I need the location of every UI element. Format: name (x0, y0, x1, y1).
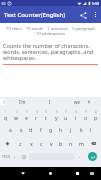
button[interactable]: Switch keyboard (85, 167, 99, 180)
staticText: p (94, 114, 98, 121)
staticText: 5 (45, 110, 47, 114)
button[interactable]: 0 (91, 109, 101, 122)
staticText: 9 (85, 110, 87, 114)
staticText: s (20, 126, 23, 133)
staticText: 5:50 (92, 1, 100, 6)
button[interactable]: Backspace (86, 137, 101, 150)
staticText: 4 (36, 110, 38, 114)
staticText: I (49, 99, 51, 105)
staticText: u (64, 114, 68, 121)
button[interactable]: More options (90, 9, 101, 20)
button[interactable]: 3 (21, 109, 31, 122)
staticText: h (59, 126, 63, 133)
button[interactable]: 8 (71, 109, 81, 122)
button[interactable]: 7 (61, 109, 71, 122)
staticText: ?123 (2, 154, 10, 159)
staticText: i (75, 114, 77, 121)
staticText: f (40, 126, 42, 133)
button[interactable]: s (16, 123, 26, 136)
staticText: b (59, 140, 63, 147)
button[interactable]: . (75, 150, 84, 163)
staticText: I'm (19, 99, 26, 105)
button[interactable]: k (76, 123, 86, 136)
button[interactable]: 2 (11, 109, 21, 122)
button[interactable]: Emoji (19, 150, 28, 163)
button[interactable]: ?123 (0, 150, 11, 163)
staticText: 70 chars 10 words 1 sentence 1 paragraph… (3, 26, 98, 36)
button[interactable]: j (66, 123, 76, 136)
staticText: j (70, 126, 72, 133)
staticText: r (35, 114, 38, 121)
staticText: q (4, 114, 8, 121)
button[interactable]: g (46, 123, 56, 136)
button[interactable]: 6 (51, 109, 61, 122)
button[interactable]: a (5, 123, 16, 136)
button[interactable]: f (36, 123, 46, 136)
button[interactable]: b (56, 137, 66, 150)
button[interactable]: , (11, 150, 19, 163)
staticText: c (40, 140, 43, 147)
staticText: we (74, 99, 80, 105)
button[interactable]: v (46, 137, 56, 150)
staticText: l (90, 126, 92, 133)
staticText: m (79, 140, 84, 147)
staticText: g (49, 126, 53, 133)
staticText: o (84, 114, 88, 121)
staticText: 8 (75, 110, 77, 114)
button[interactable]: Home (43, 167, 57, 180)
button[interactable]: 4 (31, 109, 41, 122)
staticText: Text Counter(English) (4, 11, 76, 19)
staticText: a (9, 126, 12, 133)
button[interactable]: l (86, 123, 96, 136)
button[interactable]: Enter (84, 150, 101, 163)
staticText: Counts the number of characters, words, … (3, 42, 98, 61)
staticText: n (69, 140, 73, 147)
button[interactable]: m (76, 137, 86, 150)
staticText: z (19, 140, 22, 147)
button[interactable]: h (56, 123, 66, 136)
staticText: . (79, 153, 81, 160)
staticText: 3 (26, 110, 28, 114)
staticText: , (14, 153, 16, 160)
button[interactable]: I (36, 98, 63, 106)
button[interactable]: Recents (70, 167, 84, 180)
button[interactable]: 1 (0, 109, 11, 122)
button[interactable]: z (15, 137, 26, 150)
staticText: 7 (65, 110, 67, 114)
button[interactable]: 5 (41, 109, 51, 122)
staticText: v (50, 140, 53, 147)
button[interactable]: Back (16, 167, 30, 180)
staticText: d (29, 126, 33, 133)
button[interactable]: Share (76, 8, 90, 22)
button[interactable]: we (63, 98, 90, 106)
staticText: x (30, 140, 33, 147)
staticText: 0 (95, 110, 97, 114)
staticText: 2 (16, 110, 18, 114)
staticText: y (55, 114, 58, 121)
button[interactable]: Voice input (85, 98, 93, 106)
staticText: 6 (56, 110, 58, 114)
button[interactable]: 9 (81, 109, 91, 122)
button[interactable]: Expand toolbar (0, 99, 6, 105)
button[interactable]: d (26, 123, 36, 136)
staticText: e (25, 114, 28, 121)
button[interactable]: x (26, 137, 36, 150)
button[interactable]: I'm (8, 98, 36, 106)
button[interactable]: Shift (0, 137, 15, 150)
button[interactable]: n (66, 137, 76, 150)
staticText: t (45, 114, 47, 121)
button[interactable]: c (36, 137, 46, 150)
staticText: w (14, 114, 19, 121)
staticText: 1 (5, 110, 7, 114)
staticText: k (80, 126, 83, 133)
